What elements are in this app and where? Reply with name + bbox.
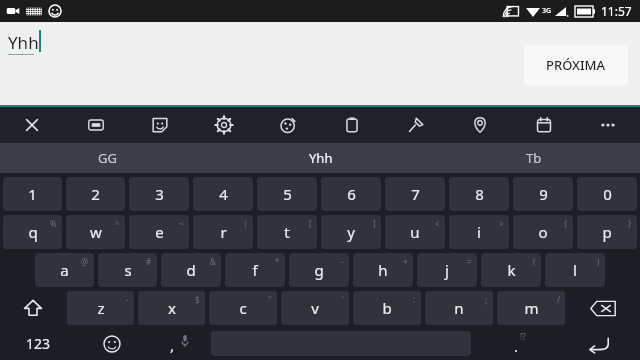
button[interactable]: a [35,253,94,287]
staticText: . [514,336,519,356]
button[interactable]: m [497,291,565,325]
button[interactable]: Emoji [75,327,149,360]
button[interactable]: v [281,291,349,325]
button[interactable]: Calendar [512,107,576,143]
staticText: : [413,294,416,305]
staticText: ] [373,218,376,229]
staticText: 9 [539,184,548,204]
staticText: r [220,222,227,242]
staticText: q [28,222,38,242]
staticText: 5 [283,184,292,204]
button[interactable]: 3 [129,177,189,211]
button[interactable]: 9 [513,177,573,211]
button[interactable]: k [481,253,541,287]
button[interactable]: z [67,291,134,325]
staticText: # [146,256,152,267]
staticText: 6 [347,184,356,204]
button[interactable]: l [545,253,605,287]
staticText: - [126,294,129,305]
button[interactable]: Close [0,107,64,143]
staticText: p [602,222,612,242]
button[interactable]: g [289,253,349,287]
staticText: 123 [26,334,51,353]
button[interactable]: c [209,291,277,325]
staticText: x [168,298,176,318]
button[interactable]: Comma and voice input [149,327,209,360]
button[interactable]: Themes [256,107,320,143]
staticText: w [90,222,102,242]
staticText: [ [309,218,312,229]
staticText: } [628,218,632,229]
staticText: - [341,256,344,267]
button[interactable]: n [425,291,493,325]
button[interactable]: Stickers [128,107,192,143]
button[interactable]: . [473,327,559,360]
button[interactable]: Yhh [214,143,427,173]
staticText: Yhh [309,149,333,167]
staticText: a [60,260,69,280]
button[interactable]: h [353,253,413,287]
staticText: = [467,256,472,267]
staticText: 7 [411,184,420,204]
button[interactable]: GIF [64,107,128,143]
button[interactable]: b [353,291,421,325]
staticText: 4 [219,184,228,204]
button[interactable]: w [66,215,125,249]
button[interactable]: Clipboard [320,107,384,143]
staticText: u [410,222,420,242]
staticText: v [311,298,319,318]
staticText: ( [533,256,536,267]
button[interactable]: x [138,291,205,325]
staticText: % [50,218,57,229]
button[interactable]: o [513,215,573,249]
button[interactable]: Shift [1,289,65,327]
staticText: e [155,222,164,242]
staticText: y [347,222,355,242]
button[interactable]: PRÓXIMA [524,45,628,85]
button[interactable]: 123 [1,327,75,360]
button[interactable]: 0 [577,177,637,211]
staticText: s [124,260,132,280]
button[interactable]: Pin [384,107,448,143]
button[interactable]: GG [0,143,214,173]
staticText: + [403,256,408,267]
button[interactable]: u [385,215,445,249]
staticText: ) [597,256,600,267]
staticText: g [314,260,324,280]
button[interactable]: 2 [66,177,125,211]
staticText: Tb [526,149,542,167]
staticText: b [382,298,392,318]
button[interactable]: j [417,253,477,287]
button[interactable]: 5 [257,177,317,211]
staticText: d [186,260,196,280]
button[interactable]: Tb [427,143,640,173]
button[interactable]: Location [448,107,512,143]
staticText: m [524,298,539,318]
button[interactable]: d [161,253,221,287]
staticText: ' [342,294,344,305]
staticText: f [252,260,258,280]
button[interactable]: r [193,215,253,249]
staticText: Yhh [8,31,39,54]
staticText: 3G [542,6,552,16]
staticText: 8 [475,184,484,204]
button[interactable]: s [98,253,157,287]
button[interactable]: More [576,107,640,143]
button[interactable]: 4 [193,177,253,211]
button[interactable]: Settings [192,107,256,143]
button[interactable]: 6 [321,177,381,211]
button[interactable]: 7 [385,177,445,211]
button[interactable]: i [449,215,509,249]
staticText: 3 [155,184,164,204]
button[interactable]: e [129,215,189,249]
button[interactable]: p [577,215,637,249]
button[interactable]: 8 [449,177,509,211]
button[interactable]: t [257,215,317,249]
button[interactable]: q [3,215,62,249]
button[interactable]: Backspace [567,289,639,327]
button[interactable]: y [321,215,381,249]
button[interactable]: f [225,253,285,287]
button[interactable]: 1 [3,177,62,211]
button[interactable]: Enter [559,327,639,360]
